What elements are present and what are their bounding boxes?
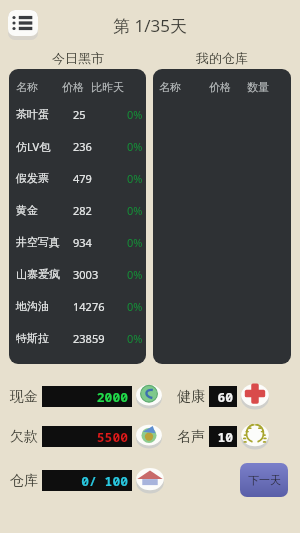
staticText: 价格 (209, 80, 231, 94)
button[interactable]: Debt (135, 422, 163, 450)
button[interactable]: 名声 (177, 426, 237, 447)
staticText: 0% (127, 203, 143, 218)
staticText: 0% (127, 107, 143, 122)
staticText: 名称 (16, 80, 38, 94)
staticText: 10 (217, 428, 233, 446)
button[interactable]: 仿LV包 (9, 130, 146, 162)
staticText: 价格 (62, 80, 84, 94)
staticText: 第 1/35天 (113, 14, 187, 37)
staticText: 0% (127, 171, 143, 186)
button[interactable]: Cash (135, 382, 163, 410)
staticText: 60 (217, 388, 233, 406)
staticText: 黄金 (16, 203, 38, 217)
staticText: 23859 (73, 331, 105, 346)
staticText: 0% (127, 139, 143, 154)
button[interactable]: Menu (8, 10, 38, 40)
staticText: 0% (127, 299, 143, 314)
staticText: 欠款 (10, 428, 38, 446)
button[interactable]: 井空写真 (9, 226, 146, 258)
staticText: 14276 (73, 299, 105, 314)
button[interactable]: 黄金 (9, 194, 146, 226)
staticText: 2000 (96, 388, 128, 406)
staticText: 0% (127, 267, 143, 282)
button[interactable]: 下一天 (240, 463, 288, 497)
button[interactable]: 山寨爱疯 (9, 258, 146, 290)
staticText: 数量 (247, 80, 269, 94)
staticText: 下一天 (248, 473, 281, 487)
button[interactable]: Health (240, 381, 270, 411)
staticText: 479 (73, 171, 92, 186)
button[interactable]: 仓库 (10, 470, 132, 491)
staticText: 比昨天 (91, 80, 124, 94)
staticText: 名声 (177, 428, 205, 446)
staticText: 地沟油 (16, 299, 49, 313)
staticText: 我的仓库 (196, 50, 248, 66)
button[interactable]: Warehouse (135, 465, 165, 495)
staticText: 0/ 100 (81, 472, 128, 490)
staticText: 25 (73, 107, 86, 122)
button[interactable]: 特斯拉 (9, 322, 146, 354)
staticText: 井空写真 (16, 235, 60, 249)
button[interactable]: 健康 (177, 386, 237, 407)
button[interactable]: 茶叶蛋 (9, 98, 146, 130)
staticText: 934 (73, 235, 92, 250)
staticText: 今日黑市 (52, 50, 104, 66)
staticText: 山寨爱疯 (16, 267, 60, 281)
staticText: 0% (127, 235, 143, 250)
staticText: 特斯拉 (16, 331, 49, 345)
staticText: 名称 (159, 80, 181, 94)
button[interactable]: Fame (240, 421, 270, 451)
staticText: 健康 (177, 388, 205, 406)
button[interactable]: 现金 (10, 386, 132, 407)
button[interactable]: 欠款 (10, 426, 132, 447)
staticText: 0% (127, 331, 143, 346)
staticText: 5500 (96, 428, 128, 446)
staticText: 仓库 (10, 472, 38, 490)
staticText: 现金 (10, 388, 38, 406)
staticText: 仿LV包 (16, 139, 51, 154)
staticText: 236 (73, 139, 92, 154)
staticText: 假发票 (16, 171, 49, 185)
button[interactable]: 假发票 (9, 162, 146, 194)
staticText: 282 (73, 203, 92, 218)
staticText: 茶叶蛋 (16, 107, 49, 121)
button[interactable]: 地沟油 (9, 290, 146, 322)
staticText: 3003 (73, 267, 99, 282)
